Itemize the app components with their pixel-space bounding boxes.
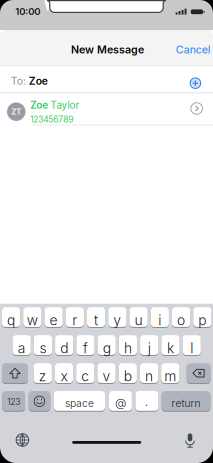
button[interactable]: j — [140, 335, 158, 355]
button[interactable]: @ — [109, 391, 132, 411]
staticText: k — [167, 338, 174, 358]
button[interactable]: return — [162, 391, 210, 411]
button[interactable]: space — [54, 391, 105, 411]
button[interactable]: Details — [190, 102, 203, 115]
button[interactable]: Cancel — [176, 43, 211, 55]
button[interactable]: d — [55, 335, 73, 355]
staticText: 10:00 — [15, 5, 40, 18]
staticText: Taylor — [50, 98, 79, 112]
button[interactable]: v — [97, 363, 116, 383]
button[interactable]: Next Keyboard — [15, 433, 29, 447]
button[interactable]: b — [119, 363, 137, 383]
button[interactable]: Add Contact — [187, 75, 203, 91]
button[interactable]: x — [55, 363, 73, 383]
button[interactable]: p — [193, 307, 211, 327]
staticText: New Message — [71, 42, 144, 57]
button[interactable]: s — [34, 335, 52, 355]
button[interactable]: n — [140, 363, 158, 383]
staticText: g — [103, 338, 111, 358]
staticText: Zoe — [29, 73, 48, 88]
button[interactable]: Shift — [2, 363, 28, 383]
button[interactable]: u — [129, 307, 148, 327]
staticText: f — [83, 338, 88, 358]
staticText: Cancel — [176, 42, 211, 57]
button[interactable]: r — [66, 307, 84, 327]
button[interactable]: ZT — [7, 96, 185, 127]
staticText: ZT — [11, 106, 21, 117]
staticText: space — [65, 396, 94, 411]
button[interactable]: 123 — [2, 391, 25, 411]
button[interactable]: h — [119, 335, 137, 355]
button[interactable]: o — [172, 307, 190, 327]
button[interactable]: g — [98, 335, 116, 355]
staticText: t — [94, 310, 98, 330]
button[interactable]: c — [76, 363, 94, 383]
staticText: u — [135, 310, 143, 330]
staticText: j — [148, 338, 151, 358]
staticText: s — [39, 338, 46, 358]
button[interactable]: k — [161, 335, 179, 355]
staticText: @ — [115, 394, 126, 411]
staticText: r — [72, 310, 77, 330]
staticText: b — [124, 366, 132, 386]
button[interactable]: w — [23, 307, 41, 327]
staticText: z — [39, 366, 47, 386]
staticText: return — [172, 396, 201, 411]
staticText: p — [198, 310, 206, 330]
button[interactable]: q — [2, 307, 20, 327]
button[interactable]: l — [183, 335, 201, 355]
staticText: e — [50, 310, 58, 330]
staticText: i — [158, 310, 161, 330]
staticText: v — [102, 366, 110, 386]
button[interactable]: a — [13, 335, 31, 355]
staticText: w — [27, 310, 38, 330]
staticText: . — [145, 392, 149, 411]
staticText: h — [124, 338, 132, 358]
staticText: 123456789 — [30, 113, 73, 125]
staticText: c — [81, 366, 89, 386]
staticText: y — [113, 310, 121, 330]
button[interactable]: . — [135, 391, 158, 411]
staticText: 123 — [7, 395, 20, 408]
staticText: o — [177, 310, 185, 330]
button[interactable]: To: — [11, 68, 181, 94]
button[interactable]: f — [76, 335, 94, 355]
button[interactable]: t — [87, 307, 105, 327]
button[interactable]: i — [151, 307, 169, 327]
button[interactable]: m — [161, 363, 179, 383]
staticText: l — [190, 338, 193, 358]
button[interactable]: Delete — [187, 363, 210, 383]
staticText: n — [145, 366, 153, 386]
staticText: d — [60, 338, 68, 358]
staticText: q — [7, 310, 15, 330]
staticText: x — [61, 366, 68, 386]
staticText: m — [164, 366, 176, 386]
staticText: a — [18, 338, 26, 358]
button[interactable]: Emoji — [29, 391, 50, 411]
button[interactable]: z — [34, 363, 52, 383]
button[interactable]: y — [108, 307, 126, 327]
staticText: Zoe — [30, 98, 48, 112]
button[interactable]: e — [44, 307, 63, 327]
button[interactable]: Dictation — [185, 433, 195, 448]
staticText: To: — [11, 73, 29, 88]
